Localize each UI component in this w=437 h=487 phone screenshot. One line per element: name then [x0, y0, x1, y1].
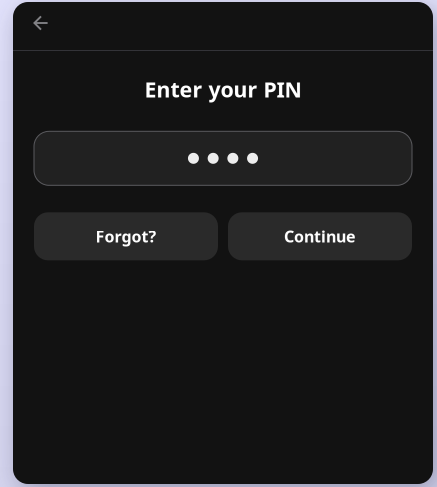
button[interactable]: Back: [24, 6, 58, 40]
staticText: Forgot?: [95, 226, 156, 247]
button[interactable]: Continue: [228, 212, 412, 260]
staticText: Enter your PIN: [144, 75, 301, 103]
button[interactable]: Forgot?: [34, 212, 218, 260]
staticText: Continue: [284, 226, 356, 247]
